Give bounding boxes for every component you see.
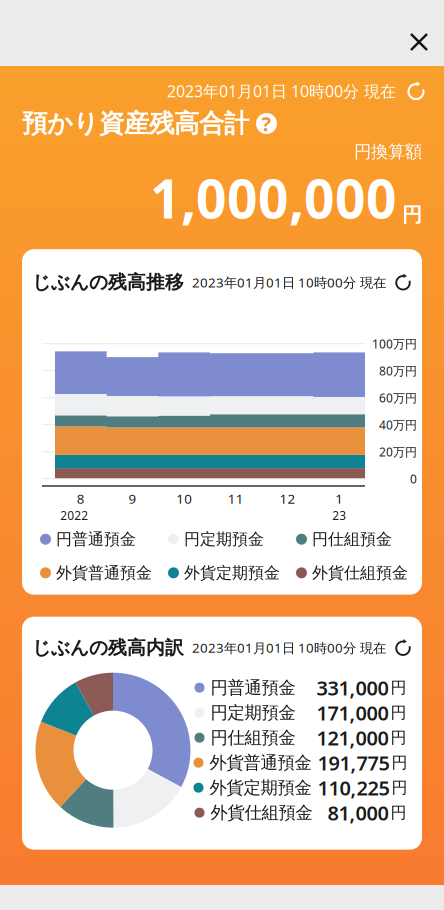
staticText: 121,000 [316, 724, 388, 751]
staticText: 外貨定期預金 [209, 777, 311, 798]
staticText: 外貨仕組預金 [210, 802, 312, 823]
button[interactable]: 更新 [390, 269, 416, 295]
staticText: 60万円 [379, 390, 417, 406]
staticText: 2023年01月01日 10時00分 現在 [192, 273, 386, 291]
staticText: 191,775 [317, 749, 389, 776]
staticText: 外貨普通預金 [209, 752, 311, 773]
staticText: 100万円 [372, 336, 417, 352]
staticText: 円仕組預金 [210, 727, 295, 748]
staticText: 331,000 [316, 674, 388, 701]
staticText: 1 [335, 490, 343, 507]
staticText: ? [261, 110, 271, 137]
staticText: 0 [410, 471, 417, 487]
staticText: 円 [390, 703, 406, 723]
staticText: 外貨仕組預金 [312, 563, 408, 583]
staticText: 171,000 [316, 699, 388, 726]
staticText: 11 [228, 490, 244, 507]
staticText: 9 [128, 490, 136, 507]
staticText: 2023年01月01日 10時00分 現在 [192, 639, 386, 656]
staticText: 円 [391, 753, 407, 773]
staticText: 2022 [60, 507, 88, 523]
staticText: 10 [176, 490, 192, 507]
staticText: 2023年01月01日 10時00分 現在 [167, 80, 396, 102]
staticText: 円換算額 [354, 141, 422, 162]
staticText: 円 [402, 203, 422, 227]
staticText: 預かり資産残高合計 [22, 108, 249, 139]
staticText: 円 [390, 678, 406, 698]
staticText: 8 [77, 490, 85, 507]
staticText: 円仕組預金 [312, 529, 392, 549]
staticText: 80万円 [379, 363, 417, 379]
staticText: 20万円 [379, 444, 417, 460]
button[interactable]: 更新 [390, 635, 416, 661]
staticText: 円定期預金 [210, 702, 295, 723]
staticText: じぶんの残高内訳 [32, 636, 184, 659]
staticText: 110,225 [317, 774, 389, 801]
staticText: 12 [279, 490, 295, 507]
staticText: 1,000,000 [150, 162, 397, 233]
staticText: 円 [390, 803, 406, 823]
button[interactable]: 閉じる [397, 20, 441, 64]
staticText: 円普通預金 [56, 529, 136, 549]
button[interactable]: ヘルプ [256, 113, 277, 134]
button[interactable]: 更新 [396, 78, 436, 104]
staticText: 円定期預金 [184, 529, 264, 549]
staticText: 23 [332, 507, 346, 523]
staticText: 円普通預金 [210, 677, 295, 698]
staticText: 外貨定期預金 [184, 563, 280, 583]
staticText: 外貨普通預金 [56, 563, 152, 583]
staticText: じぶんの残高推移 [32, 271, 184, 294]
staticText: 81,000 [327, 799, 388, 826]
staticText: 40万円 [379, 417, 417, 433]
staticText: 円 [391, 778, 407, 798]
staticText: 円 [390, 728, 406, 748]
